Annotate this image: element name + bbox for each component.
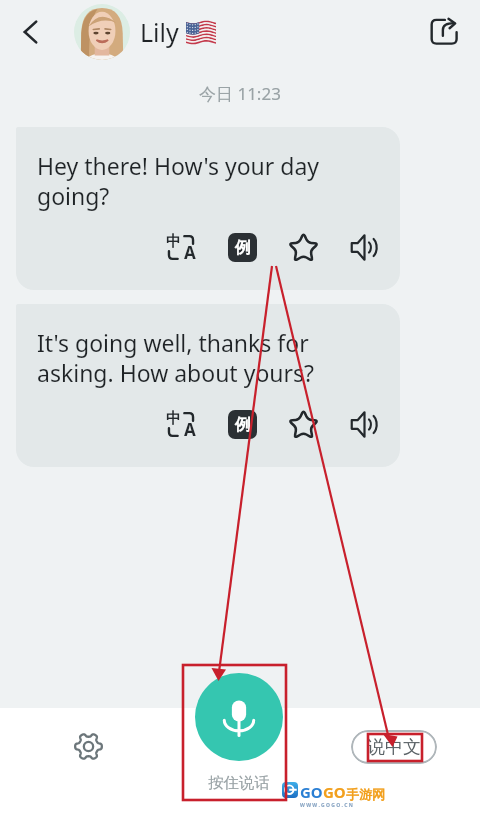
button[interactable]: Translate: [164, 407, 198, 441]
button[interactable]: Example: [225, 407, 259, 441]
staticText: 按住说话: [208, 773, 270, 793]
button[interactable]: Settings: [66, 724, 110, 768]
button[interactable]: Favorite: [286, 407, 320, 441]
staticText: Hey there! How's your day going?: [37, 150, 378, 212]
button[interactable]: Example: [225, 230, 259, 264]
button[interactable]: Favorite: [286, 230, 320, 264]
staticText: It's going well, thanks for asking. How …: [37, 327, 378, 389]
staticText: 例: [235, 238, 251, 258]
button[interactable]: Hey there! How's your day going?: [16, 127, 400, 290]
staticText: 手游网: [346, 786, 385, 802]
button[interactable]: Translate: [164, 230, 198, 264]
staticText: 说中文: [367, 736, 421, 759]
button[interactable]: It's going well, thanks for asking. How …: [16, 304, 400, 467]
button[interactable]: Share: [422, 9, 466, 53]
button[interactable]: Play audio: [347, 407, 381, 441]
button[interactable]: 说中文: [351, 730, 437, 764]
staticText: 中: [166, 409, 181, 428]
button[interactable]: Back: [9, 10, 53, 54]
button[interactable]: Play audio: [347, 230, 381, 264]
staticText: Lily: [140, 15, 179, 49]
staticText: 今日 11:23: [199, 82, 281, 105]
staticText: 中: [166, 232, 181, 251]
staticText: A: [184, 418, 196, 441]
staticText: A: [184, 241, 196, 264]
staticText: GO: [300, 782, 323, 802]
staticText: GO: [323, 782, 346, 802]
button[interactable]: Hold to talk: [195, 673, 283, 761]
staticText: 例: [235, 415, 251, 435]
staticText: W W W . G O G O . C N: [300, 802, 353, 809]
